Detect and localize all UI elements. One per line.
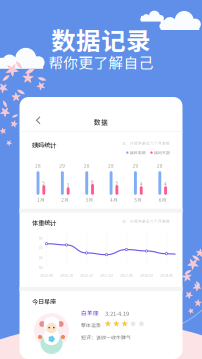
staticText: 今日星座 <box>32 297 56 306</box>
staticText: 6 <box>91 178 94 185</box>
staticText: 姨妈周期 <box>130 150 146 155</box>
staticText: 60 <box>38 255 42 260</box>
staticText: 5月 <box>134 196 142 203</box>
staticText: 2017.06 <box>120 272 133 278</box>
staticText: 白羊座 <box>81 309 99 317</box>
staticText: 2016.08 <box>40 272 53 278</box>
staticText: 5 <box>115 179 118 186</box>
staticText: 28 <box>84 162 90 169</box>
staticText: 体重统计 <box>32 218 56 227</box>
staticText: 28 <box>35 162 41 169</box>
staticText: 注：只提供最近六个月数据 <box>122 219 170 224</box>
staticText: 短评：该收一收牛脾气 <box>81 334 131 341</box>
staticText: 帮你更了解自己 <box>48 51 153 73</box>
button[interactable]: Back <box>32 113 46 127</box>
staticText: 28 <box>157 162 163 169</box>
staticText: 3 <box>67 182 70 189</box>
staticText: 4 <box>140 181 143 187</box>
staticText: 4月 <box>110 196 118 203</box>
staticText: 28 <box>108 162 114 169</box>
staticText: 2016.12 <box>80 272 93 278</box>
staticText: 注：只提供最近六个月数据 <box>122 141 170 146</box>
staticText: 3月 <box>86 196 94 203</box>
staticText: 6月 <box>159 196 167 203</box>
staticText: 2018.06 <box>160 272 173 278</box>
staticText: 整体运势 <box>81 322 101 329</box>
staticText: 数据记录 <box>51 21 151 57</box>
staticText: 4 <box>164 181 167 187</box>
staticText: 29 <box>59 162 65 169</box>
staticText: 5 <box>42 179 45 186</box>
staticText: 2017.02 <box>100 272 113 278</box>
staticText: 姨妈统计 <box>32 140 56 149</box>
staticText: 50 <box>38 265 42 270</box>
staticText: 80 <box>38 235 42 241</box>
staticText: 3.21-4.19 <box>105 309 129 317</box>
staticText: 姨妈天数 <box>154 150 170 155</box>
staticText: 2018.02 <box>140 272 153 278</box>
staticText: 2月 <box>61 196 69 203</box>
staticText: 70 <box>38 245 42 250</box>
staticText: 2016.10 <box>60 272 73 278</box>
staticText: 数据 <box>94 117 108 127</box>
staticText: 1月 <box>37 196 45 203</box>
staticText: 29 <box>132 162 138 169</box>
